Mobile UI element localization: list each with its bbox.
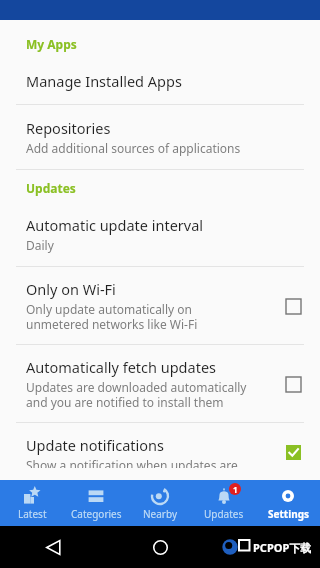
button[interactable]: Nearby bbox=[128, 480, 192, 526]
staticText: 1 bbox=[233, 484, 238, 495]
staticText: Nearby bbox=[143, 507, 178, 521]
button[interactable]: Toggle bbox=[282, 295, 304, 317]
staticText: Only on Wi-Fi bbox=[26, 279, 116, 299]
button[interactable]: Repositories bbox=[0, 105, 320, 169]
staticText: Automatic update interval bbox=[26, 215, 204, 235]
button[interactable]: Manage Installed Apps bbox=[0, 58, 320, 104]
button[interactable]: Home bbox=[145, 532, 175, 562]
staticText: Updates are downloaded automatically and… bbox=[26, 379, 247, 410]
staticText: Only update automatically on unmetered n… bbox=[26, 301, 198, 332]
staticText: Latest bbox=[18, 507, 47, 521]
staticText: Updates bbox=[204, 507, 244, 521]
staticText: Show a notification when updates are bbox=[26, 457, 238, 468]
button[interactable]: Only on Wi-Fi bbox=[0, 267, 320, 344]
button[interactable]: Back bbox=[38, 532, 68, 562]
button[interactable]: Toggle bbox=[282, 373, 304, 395]
staticText: My Apps bbox=[26, 36, 77, 52]
staticText: Repositories bbox=[26, 118, 111, 138]
staticText: Automatically fetch updates bbox=[26, 357, 217, 377]
button[interactable]: Automatically fetch updates bbox=[0, 345, 320, 422]
staticText: Categories bbox=[71, 507, 122, 521]
staticText: Daily bbox=[26, 237, 54, 253]
button[interactable]: Categories bbox=[64, 480, 128, 526]
button[interactable]: Automatic update interval bbox=[0, 202, 320, 266]
button[interactable]: Toggle bbox=[282, 441, 304, 463]
button[interactable]: Update notifications bbox=[0, 423, 320, 480]
staticText: Update notifications bbox=[26, 435, 164, 455]
staticText: Add additional sources of applications bbox=[26, 140, 241, 156]
staticText: Settings bbox=[268, 507, 309, 521]
button[interactable]: Latest bbox=[0, 480, 64, 526]
button[interactable]: Settings bbox=[256, 480, 320, 526]
button[interactable]: 1 bbox=[192, 480, 256, 526]
staticText: Updates bbox=[26, 180, 76, 196]
staticText: PCPOP下载 bbox=[253, 540, 312, 555]
staticText: Manage Installed Apps bbox=[26, 71, 182, 91]
